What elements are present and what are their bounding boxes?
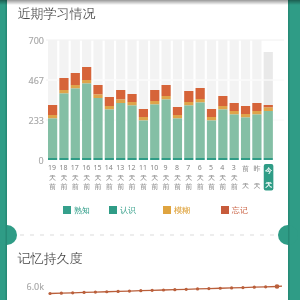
button[interactable]: [160, 202, 196, 218]
button[interactable]: [262, 162, 276, 192]
button[interactable]: [106, 202, 142, 218]
button[interactable]: [60, 202, 96, 218]
button[interactable]: [218, 202, 254, 218]
